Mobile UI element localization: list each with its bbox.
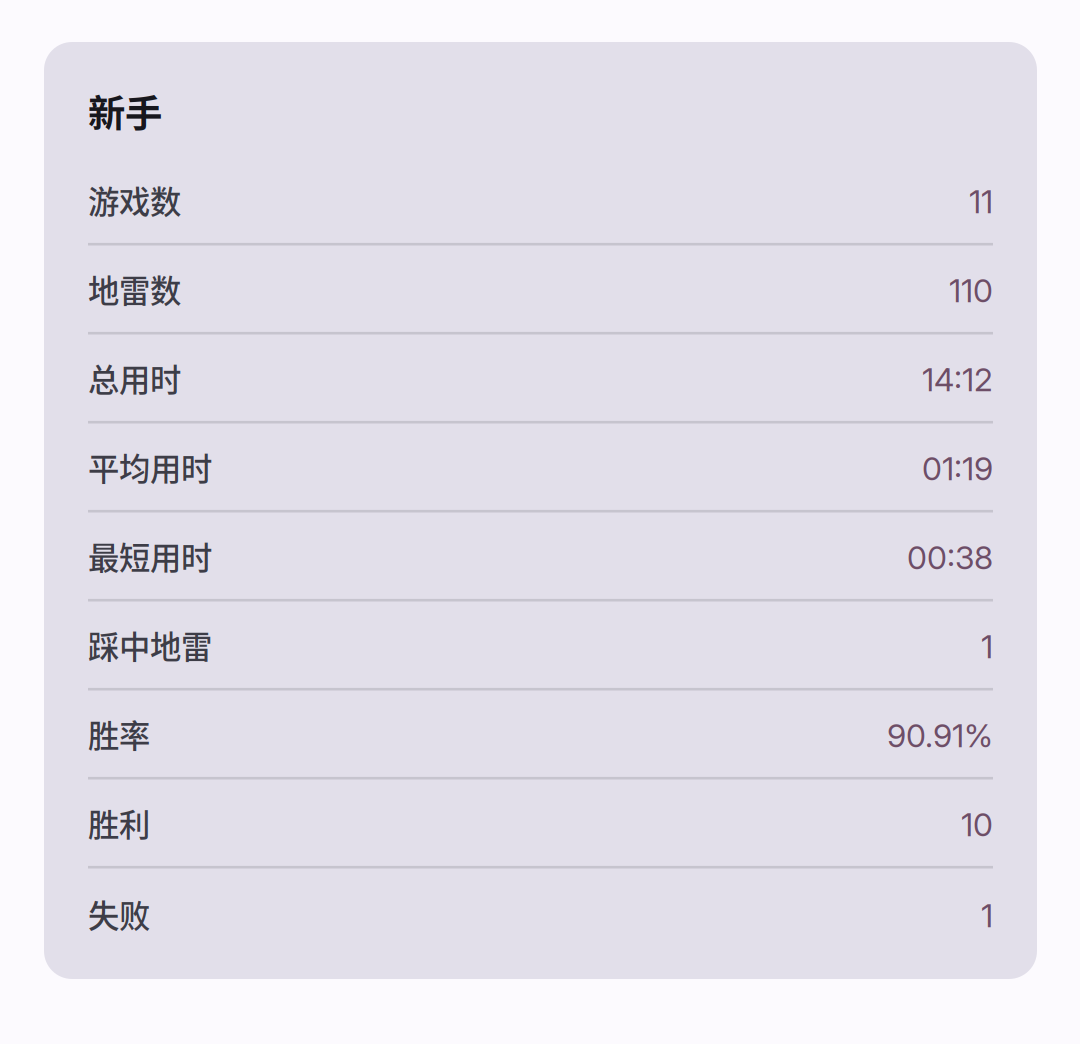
button[interactable]: 总用时 <box>88 334 993 423</box>
staticText: 失败 <box>88 891 150 937</box>
staticText: 00:38 <box>907 538 993 577</box>
staticText: 14:12 <box>922 360 993 399</box>
button[interactable]: 胜利 <box>88 779 993 868</box>
button[interactable]: 最短用时 <box>88 512 993 601</box>
button[interactable]: 失败 <box>88 868 993 957</box>
staticText: 踩中地雷 <box>88 622 212 668</box>
staticText: 90.91% <box>887 716 993 755</box>
staticText: 胜利 <box>88 800 150 846</box>
staticText: 平均用时 <box>88 444 212 490</box>
staticText: 01:19 <box>922 449 993 488</box>
staticText: 总用时 <box>88 355 181 401</box>
button[interactable]: 游戏数 <box>88 156 993 245</box>
staticText: 11 <box>969 182 993 221</box>
button[interactable]: 胜率 <box>88 690 993 779</box>
staticText: 新手 <box>88 84 162 138</box>
button[interactable]: 地雷数 <box>88 245 993 334</box>
staticText: 10 <box>961 805 993 844</box>
button[interactable]: 踩中地雷 <box>88 601 993 690</box>
staticText: 110 <box>949 271 993 310</box>
staticText: 1 <box>981 627 993 666</box>
button[interactable]: 平均用时 <box>88 423 993 512</box>
staticText: 最短用时 <box>88 533 212 579</box>
staticText: 游戏数 <box>88 177 181 223</box>
staticText: 地雷数 <box>88 266 181 312</box>
staticText: 胜率 <box>88 711 150 757</box>
staticText: 1 <box>981 896 993 935</box>
